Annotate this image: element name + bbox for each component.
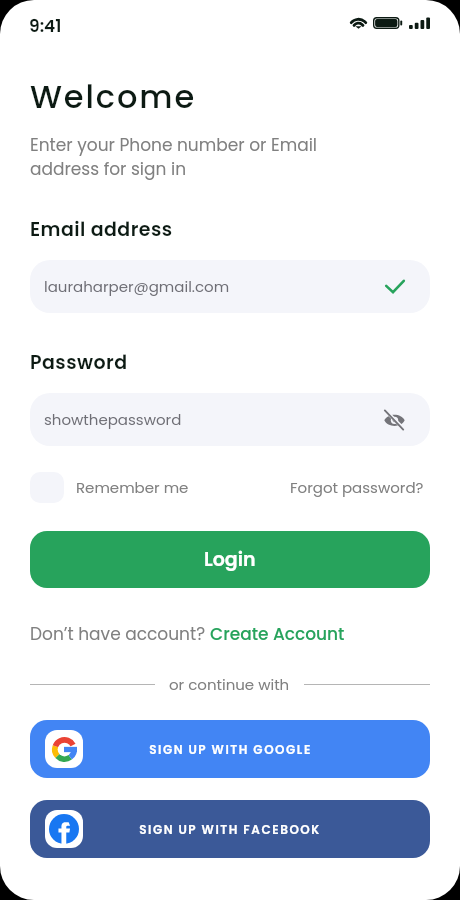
staticText: or continue with <box>169 674 290 695</box>
button[interactable]: Login <box>30 531 430 588</box>
staticText: Password <box>30 349 128 376</box>
staticText: Enter your Phone number or Email address… <box>30 133 318 181</box>
staticText: showthepassword <box>44 409 182 430</box>
button[interactable]: SIGN UP WITH FACEBOOK <box>30 800 430 858</box>
staticText: lauraharper@gmail.com <box>44 276 230 297</box>
staticText: SIGN UP WITH GOOGLE <box>149 741 312 758</box>
staticText: Login <box>204 546 256 573</box>
button[interactable]: Create Account <box>210 622 345 646</box>
staticText: Remember me <box>76 477 189 498</box>
staticText: Welcome <box>30 74 197 119</box>
button[interactable]: showthepassword <box>30 393 430 446</box>
button[interactable]: SIGN UP WITH GOOGLE <box>30 720 430 778</box>
other: Show password <box>384 411 405 429</box>
staticText: Don’t have account? <box>30 622 210 646</box>
staticText: 9:41 <box>29 14 62 38</box>
button[interactable]: Forgot password? <box>290 477 424 498</box>
staticText: SIGN UP WITH FACEBOOK <box>139 821 321 838</box>
button[interactable]: Remember me <box>30 472 189 503</box>
staticText: Email address <box>30 216 173 243</box>
button[interactable]: lauraharper@gmail.com <box>30 260 430 313</box>
